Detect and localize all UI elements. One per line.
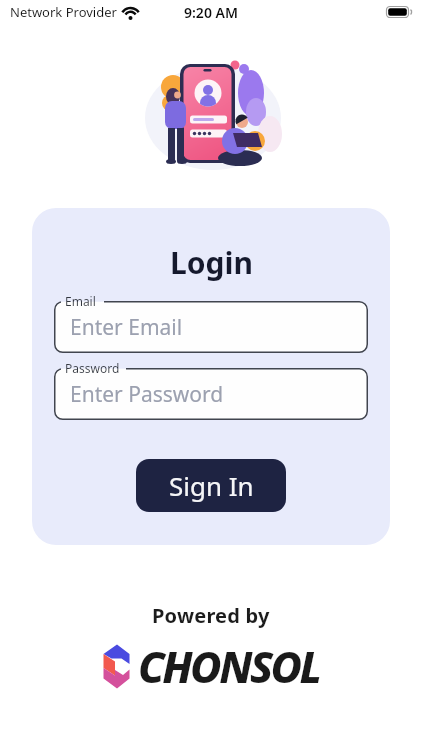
staticText: Enter Email: [70, 313, 183, 342]
staticText: CHONSOL: [138, 637, 320, 696]
staticText: Enter Password: [70, 380, 224, 409]
staticText: Password: [65, 360, 120, 376]
staticText: Email: [65, 293, 96, 309]
staticText: Powered by: [152, 602, 270, 629]
button[interactable]: Enter Password: [54, 368, 368, 420]
staticText: 9:20 AM: [184, 3, 238, 22]
button[interactable]: Sign In: [136, 459, 286, 512]
staticText: Network Provider: [10, 3, 117, 21]
button[interactable]: Enter Email: [54, 301, 368, 353]
staticText: Sign In: [169, 468, 254, 503]
staticText: Login: [170, 242, 253, 283]
